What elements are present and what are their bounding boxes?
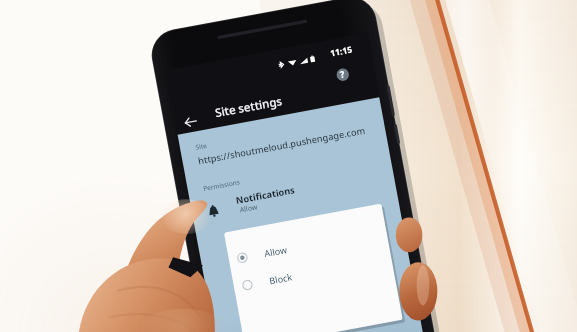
button[interactable]: Site settings notifications permission d… — [0, 0, 577, 332]
